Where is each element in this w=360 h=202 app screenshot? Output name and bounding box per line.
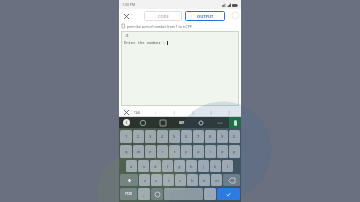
button[interactable]: 2 [133, 130, 144, 143]
button[interactable]: : [146, 107, 165, 117]
button[interactable]: 5 [169, 130, 180, 143]
button[interactable]: m [211, 174, 222, 186]
button[interactable]: | [184, 107, 202, 117]
staticText: print the sum of number from 1 to n.CPP [127, 24, 192, 29]
staticText: 6 [185, 134, 188, 139]
staticText: 4 [161, 134, 164, 139]
button[interactable]: :0 [121, 31, 239, 106]
button[interactable]: 6 [181, 130, 192, 143]
button[interactable]: Emoji [151, 188, 163, 200]
button[interactable]: Backspace [223, 174, 240, 186]
staticText: i [210, 149, 212, 154]
staticText: d [154, 164, 157, 169]
staticText: b [191, 178, 194, 183]
button[interactable]: a [126, 160, 137, 172]
staticText: m [215, 178, 219, 183]
staticText: j [203, 164, 205, 169]
staticText: : [155, 110, 157, 115]
staticText: 2 [137, 134, 140, 139]
button[interactable]: Expand toolbar [119, 117, 133, 128]
button[interactable]: 9 [217, 130, 228, 143]
button[interactable]: h [186, 160, 197, 172]
staticText: 3 [149, 134, 152, 139]
button[interactable]: Settings [191, 117, 210, 128]
button[interactable]: y [181, 145, 192, 158]
button[interactable]: More [210, 117, 229, 128]
button[interactable]: p [229, 145, 240, 158]
button[interactable]: 0 [229, 130, 240, 143]
staticText: 9 [221, 134, 224, 139]
button[interactable]: n [199, 174, 210, 186]
button[interactable]: More [231, 11, 240, 20]
button[interactable]: c [163, 174, 174, 186]
button[interactable]: w [133, 145, 144, 158]
button[interactable]: | [165, 107, 184, 117]
button[interactable]: . [204, 188, 216, 200]
button[interactable]: CODE [144, 11, 182, 21]
button[interactable]: x [151, 174, 162, 186]
button[interactable]: TAB [133, 110, 142, 115]
staticText: w [137, 149, 141, 154]
staticText: e [149, 149, 152, 154]
staticText: OUTPUT [197, 14, 214, 19]
button[interactable]: Clipboard [153, 117, 172, 128]
button[interactable]: j [198, 160, 209, 172]
button[interactable]: Space [164, 188, 203, 200]
button[interactable]: v [175, 174, 186, 186]
button[interactable]: 1 [120, 130, 132, 143]
staticText: ?123 [125, 192, 132, 196]
button[interactable]: z [139, 174, 150, 186]
button[interactable]: u [193, 145, 204, 158]
button[interactable]: Enter [217, 188, 240, 200]
button[interactable]: g [174, 160, 185, 172]
staticText: u [197, 149, 200, 154]
button[interactable]: l [222, 160, 233, 172]
button[interactable]: b [187, 174, 198, 186]
button[interactable]: i [205, 145, 216, 158]
button[interactable]: r [157, 145, 168, 158]
staticText: y [185, 149, 188, 154]
button[interactable]: t [169, 145, 180, 158]
staticText: | [228, 110, 231, 115]
staticText: h [190, 164, 193, 169]
button[interactable]: 7 [193, 130, 204, 143]
button[interactable]: s [138, 160, 149, 172]
staticText: 5 [173, 134, 176, 139]
button[interactable]: 3 [145, 130, 156, 143]
staticText: . [209, 192, 211, 197]
button[interactable]: Stickers [133, 117, 153, 128]
staticText: , [143, 192, 145, 197]
staticText: 1:00 PM [122, 2, 136, 7]
staticText: | [192, 110, 195, 115]
button[interactable]: d [150, 160, 161, 172]
button[interactable]: Shift [120, 174, 138, 186]
staticText: p [233, 149, 236, 154]
staticText: 7 [197, 134, 200, 139]
button[interactable]: q [120, 145, 132, 158]
button[interactable]: | [202, 107, 220, 117]
staticText: a [130, 164, 133, 169]
button[interactable]: ?123 [120, 188, 137, 200]
button[interactable]: f [162, 160, 173, 172]
button[interactable]: GIF [172, 117, 191, 128]
button[interactable]: Close [121, 11, 131, 21]
button[interactable]: OUTPUT [185, 11, 225, 21]
staticText: :0 [124, 33, 129, 38]
staticText: v [179, 178, 182, 183]
button[interactable]: , [138, 188, 150, 200]
staticText: o [221, 149, 224, 154]
staticText: g [178, 164, 181, 169]
staticText: Enter the number : [124, 40, 166, 45]
button[interactable]: 4 [157, 130, 168, 143]
button[interactable]: o [217, 145, 228, 158]
button[interactable]: k [210, 160, 221, 172]
staticText: n [203, 178, 206, 183]
staticText: q [125, 149, 128, 154]
button[interactable]: | [220, 107, 238, 117]
button[interactable]: Close keyboard [122, 108, 130, 116]
staticText: x [155, 178, 158, 183]
staticText: 8 [209, 134, 212, 139]
button[interactable]: Voice input [229, 117, 241, 128]
button[interactable]: e [145, 145, 156, 158]
button[interactable]: 8 [205, 130, 216, 143]
